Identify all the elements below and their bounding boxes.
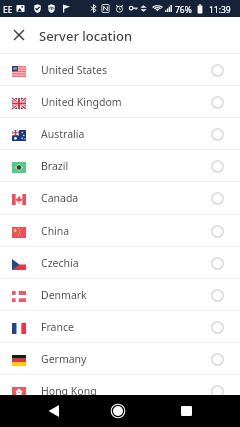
staticText: United States bbox=[41, 63, 107, 77]
staticText: France bbox=[41, 320, 74, 334]
staticText: Denmark bbox=[41, 288, 87, 302]
button[interactable]: France bbox=[0, 310, 240, 342]
button[interactable]: Hong Kong bbox=[0, 374, 240, 406]
staticText: EE bbox=[3, 4, 13, 16]
button[interactable]: Germany bbox=[0, 342, 240, 374]
staticText: 76% bbox=[175, 4, 192, 16]
button[interactable]: Recents bbox=[170, 395, 202, 427]
button[interactable]: Australia bbox=[0, 117, 240, 149]
button[interactable]: Home bbox=[102, 395, 134, 427]
button[interactable]: Denmark bbox=[0, 278, 240, 310]
staticText: Hong Kong bbox=[41, 384, 97, 398]
button[interactable]: China bbox=[0, 214, 240, 246]
staticText: Germany bbox=[41, 352, 87, 366]
button[interactable]: United States bbox=[0, 53, 240, 85]
staticText: United Kingdom bbox=[41, 95, 122, 109]
button[interactable]: Brazil bbox=[0, 149, 240, 181]
staticText: Canada bbox=[41, 191, 79, 205]
button[interactable]: Czechia bbox=[0, 246, 240, 278]
button[interactable]: Close bbox=[7, 17, 31, 53]
button[interactable]: Back bbox=[37, 395, 69, 427]
button[interactable]: United Kingdom bbox=[0, 85, 240, 117]
staticText: Australia bbox=[41, 127, 85, 141]
staticText: Brazil bbox=[41, 159, 69, 173]
button[interactable]: Canada bbox=[0, 181, 240, 213]
staticText: Server location bbox=[39, 27, 133, 45]
staticText: Czechia bbox=[41, 256, 79, 270]
staticText: 11:39 bbox=[209, 4, 231, 16]
staticText: China bbox=[41, 224, 70, 238]
